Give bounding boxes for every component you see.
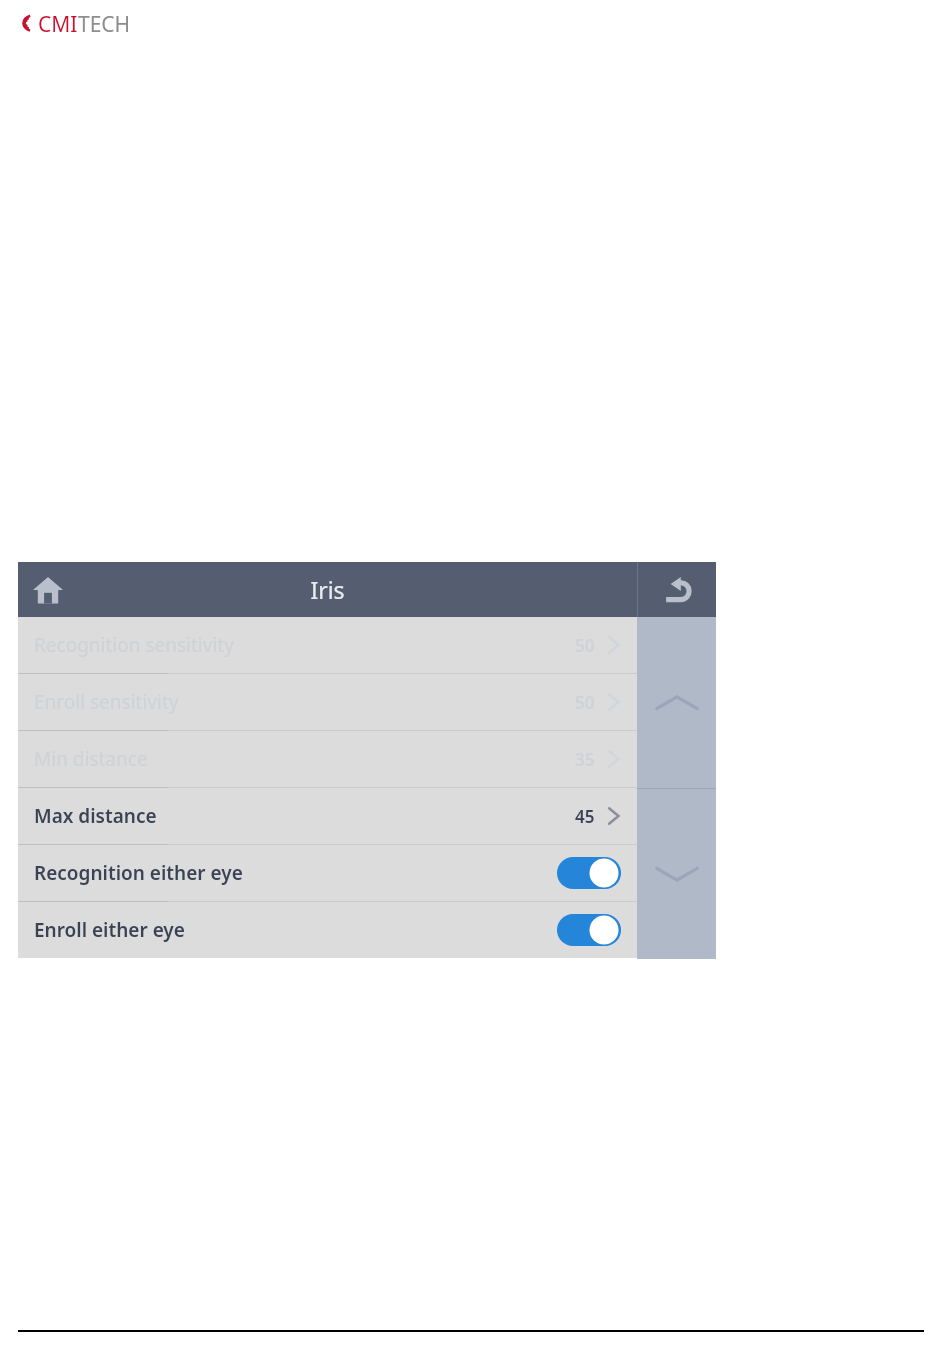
button[interactable] (557, 857, 621, 889)
button[interactable]: Back (638, 562, 716, 617)
button[interactable]: Enroll either eye (18, 902, 637, 958)
staticText: Iris (310, 574, 345, 617)
staticText: Recognition sensitivity (34, 632, 234, 658)
staticText: Enroll either eye (34, 917, 185, 943)
staticText: Enroll sensitivity (34, 689, 179, 715)
staticText: 50 (575, 691, 595, 714)
staticText: 50 (575, 634, 595, 657)
button[interactable]: Recognition either eye (18, 845, 637, 901)
staticText: 45 (575, 805, 595, 828)
staticText: 35 (575, 748, 595, 771)
button[interactable]: Max distance (18, 788, 637, 844)
staticText: Max distance (34, 803, 157, 829)
staticText: TECH (78, 10, 131, 39)
button[interactable] (557, 914, 621, 946)
staticText: CMI (38, 10, 78, 39)
staticText: Recognition either eye (34, 860, 243, 886)
staticText: Min distance (34, 746, 148, 772)
button[interactable]: Home (18, 562, 78, 617)
